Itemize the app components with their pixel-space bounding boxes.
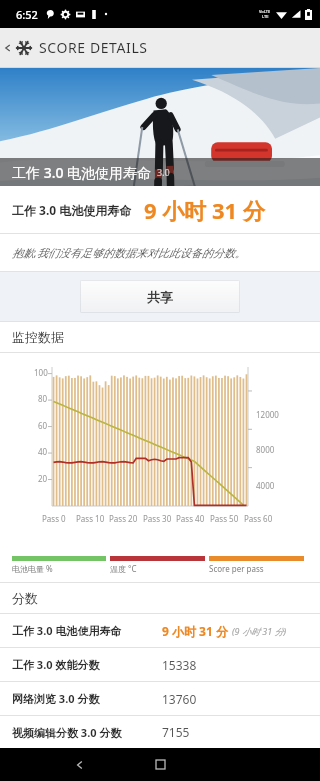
- staticText: 15338: [162, 657, 197, 673]
- staticText: (9 小时 31 分): [232, 625, 287, 637]
- button[interactable]: Home: [140, 748, 180, 781]
- staticText: 20: [38, 473, 48, 484]
- button[interactable]: 工作 3.0 电池使用寿命: [0, 614, 320, 647]
- staticText: 监控数据: [12, 329, 64, 345]
- button[interactable]: 网络浏览 3.0 分数: [0, 682, 320, 715]
- button[interactable]: 工作 3.0 效能分数: [0, 648, 320, 681]
- staticText: SCORE DETAILS: [39, 38, 148, 57]
- staticText: 工作 3.0 电池使用寿命: [12, 202, 132, 218]
- staticText: 工作 3.0 电池使用寿命: [12, 163, 152, 182]
- staticText: Pass 50: [210, 513, 239, 524]
- staticText: 9 小时 31 分: [144, 195, 265, 225]
- staticText: 温度 °C: [110, 563, 137, 574]
- button[interactable]: 共享: [80, 280, 240, 313]
- staticText: Pass 30: [143, 513, 172, 524]
- staticText: 共享: [147, 289, 173, 305]
- staticText: 电池电量 %: [12, 563, 53, 574]
- staticText: 9 小时 31 分: [162, 623, 228, 639]
- staticText: 40: [38, 446, 48, 457]
- staticText: 13760: [162, 691, 197, 707]
- staticText: 工作 3.0 电池使用寿命: [12, 623, 162, 638]
- staticText: 100: [34, 367, 48, 378]
- staticText: 视频编辑分数 3.0 分数: [12, 725, 162, 740]
- staticText: 8000: [256, 444, 275, 455]
- staticText: 3.0: [157, 166, 170, 178]
- staticText: 工作 3.0 效能分数: [12, 657, 162, 672]
- staticText: Pass 60: [244, 513, 273, 524]
- staticText: Pass 10: [76, 513, 105, 524]
- button[interactable]: Back: [60, 748, 100, 781]
- staticText: Pass 0: [42, 513, 66, 524]
- button[interactable]: 视频编辑分数 3.0 分数: [0, 716, 320, 748]
- staticText: 60: [38, 420, 48, 431]
- staticText: Pass 40: [176, 513, 205, 524]
- staticText: 6:52: [16, 7, 38, 22]
- staticText: Pass 20: [109, 513, 138, 524]
- staticText: 4000: [256, 480, 275, 491]
- staticText: 80: [38, 393, 48, 404]
- staticText: 网络浏览 3.0 分数: [12, 691, 162, 706]
- staticText: VoLTE: [259, 9, 271, 14]
- staticText: 12000: [256, 409, 279, 420]
- staticText: 分数: [12, 590, 38, 606]
- button[interactable]: Back: [0, 28, 16, 67]
- staticText: 7155: [162, 724, 190, 740]
- staticText: 抱歉,我们没有足够的数据来对比此设备的分数。: [12, 245, 246, 260]
- staticText: LTE: [262, 14, 269, 19]
- staticText: Score per pass: [209, 563, 264, 574]
